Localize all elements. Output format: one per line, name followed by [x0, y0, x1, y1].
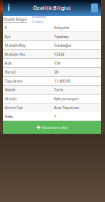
staticText: Mahalle/Köy — [4, 43, 25, 48]
staticText: Özellik Bilgisi — [33, 4, 71, 12]
staticText: Ana Taşınmaz — [54, 105, 79, 110]
staticText: Favorilere ekle — [42, 125, 68, 130]
staticText: Parsel — [4, 69, 15, 75]
staticText: Sulubağlar — [54, 43, 72, 48]
staticText: Nitelik — [4, 87, 15, 92]
button[interactable]: Back — [3, 0, 14, 16]
staticText: Tapu Alanı — [4, 78, 22, 83]
button[interactable]: Özellik Bilgisi — [3, 16, 27, 23]
staticText: 11.400,00 — [54, 78, 70, 83]
staticText: Zemin Tipi — [4, 105, 22, 110]
staticText: Tepebaşı — [54, 34, 69, 39]
staticText: Mahalle No. — [4, 51, 25, 57]
staticText: Eskişehir — [54, 25, 70, 30]
staticText: Mevkii — [4, 96, 16, 101]
button[interactable]: Map — [90, 3, 101, 12]
staticText: 1 — [54, 114, 56, 119]
staticText: Özellik Bilgisi — [3, 16, 27, 22]
staticText: 134 — [54, 60, 60, 66]
staticText: Ada — [4, 60, 11, 66]
button[interactable]: Maliklik Listesi — [27, 16, 51, 23]
staticText: İlçe — [4, 34, 10, 39]
staticText: Kahramanyeri — [54, 96, 79, 101]
staticText: 28 — [54, 69, 58, 75]
staticText: Tarla — [54, 87, 63, 92]
staticText: İl — [4, 25, 6, 30]
staticText: Maliklik Listesi — [32, 14, 46, 24]
staticText: ✚ — [36, 124, 40, 130]
staticText: i — [7, 3, 9, 13]
button[interactable]: ✚ — [3, 121, 101, 134]
staticText: Pafta — [4, 114, 12, 119]
staticText: 13334 — [54, 51, 64, 57]
